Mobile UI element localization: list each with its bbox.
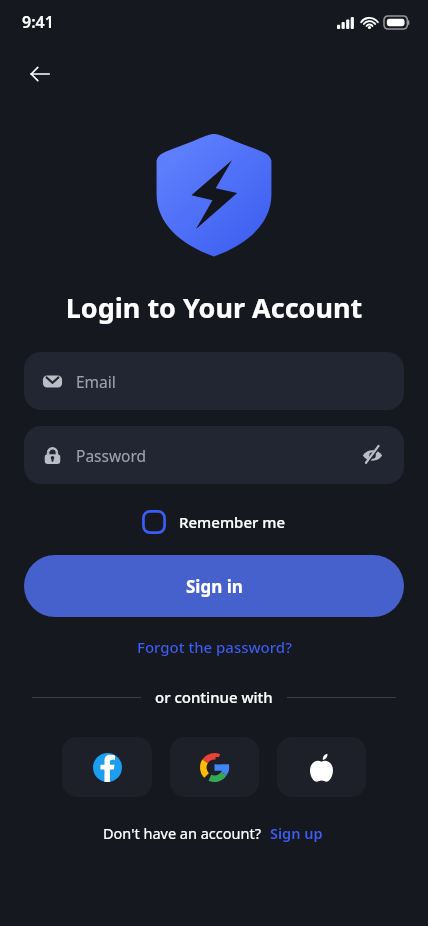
staticText: Forgot the password? [137, 637, 292, 657]
button[interactable]: Show password [358, 441, 386, 469]
button[interactable]: Sign in with Apple [277, 737, 366, 797]
staticText: Sign up [270, 823, 323, 843]
staticText: 9:41 [22, 11, 54, 33]
staticText: Remember me [179, 512, 286, 532]
button[interactable]: Sign in with Google [170, 737, 259, 797]
staticText: Sign in [186, 575, 243, 598]
button[interactable]: Forgot the password? [0, 637, 428, 657]
button[interactable]: Sign in with Facebook [62, 737, 152, 797]
button[interactable]: Back [18, 52, 62, 96]
button[interactable]: Email [24, 352, 404, 410]
staticText: Email [76, 371, 386, 392]
staticText: Password [76, 445, 358, 466]
button[interactable]: Remember me [138, 506, 290, 538]
staticText: Login to Your Account [0, 289, 428, 326]
button[interactable]: Sign in [24, 555, 404, 617]
button[interactable]: Password [24, 426, 404, 484]
button[interactable]: Sign up [268, 821, 325, 845]
staticText: or continue with [155, 687, 273, 707]
staticText: Don't have an account? [103, 823, 261, 843]
